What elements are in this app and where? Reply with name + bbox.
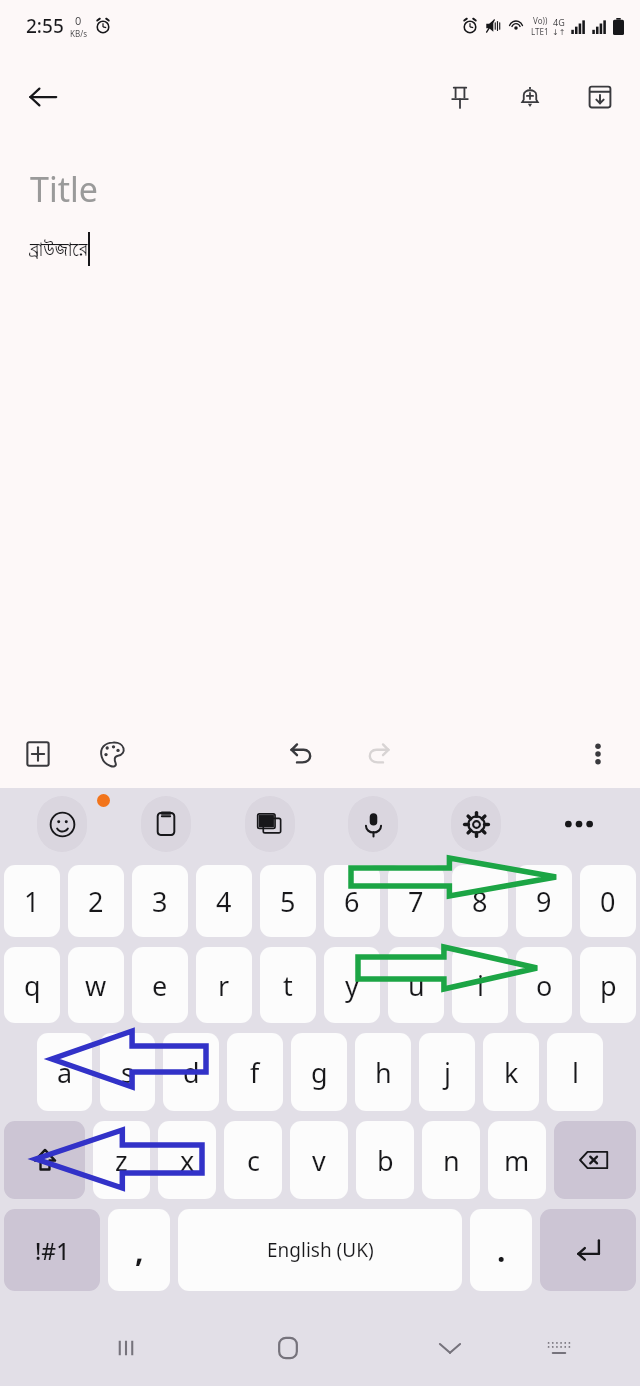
staticText: KB/s: [70, 28, 87, 39]
button[interactable]: j: [419, 1033, 475, 1111]
staticText: 5: [280, 883, 296, 920]
button[interactable]: Voice input: [348, 796, 398, 852]
staticText: x: [180, 1142, 195, 1179]
staticText: ব্রাউজারে: [30, 238, 88, 260]
button[interactable]: Full stop: [470, 1209, 532, 1291]
button[interactable]: s: [100, 1033, 155, 1111]
button[interactable]: Home: [260, 1320, 316, 1376]
button[interactable]: Settings: [451, 796, 501, 852]
button[interactable]: q: [4, 947, 60, 1023]
button[interactable]: More keyboard options: [527, 788, 630, 860]
staticText: v: [312, 1142, 326, 1179]
staticText: m: [504, 1142, 530, 1179]
button[interactable]: Undo: [274, 728, 326, 780]
button[interactable]: Enter: [540, 1209, 636, 1291]
button[interactable]: Shift: [4, 1121, 85, 1199]
button[interactable]: Clipboard: [141, 796, 191, 852]
button[interactable]: Keyboard modes: [245, 796, 295, 852]
staticText: z: [115, 1142, 128, 1179]
staticText: l: [572, 1054, 579, 1091]
staticText: 0: [75, 13, 82, 28]
button[interactable]: 5: [260, 865, 316, 937]
staticText: r: [218, 967, 230, 1004]
staticText: k: [504, 1054, 519, 1091]
button[interactable]: Symbols: [4, 1209, 100, 1291]
staticText: f: [250, 1054, 260, 1091]
staticText: 9: [536, 883, 552, 920]
button[interactable]: h: [355, 1033, 411, 1111]
staticText: g: [311, 1054, 328, 1091]
button[interactable]: Back: [14, 68, 72, 126]
button[interactable]: Hide keyboard: [422, 1320, 478, 1376]
button[interactable]: v: [290, 1121, 348, 1199]
button[interactable]: p: [580, 947, 636, 1023]
staticText: s: [121, 1054, 134, 1091]
button[interactable]: a: [37, 1033, 92, 1111]
button[interactable]: w: [68, 947, 124, 1023]
button[interactable]: o: [516, 947, 572, 1023]
staticText: ↓↑: [552, 28, 566, 37]
button[interactable]: Add reminder: [504, 71, 556, 123]
button[interactable]: 7: [388, 865, 444, 937]
staticText: 8: [472, 883, 488, 920]
button[interactable]: Comma: [108, 1209, 170, 1291]
staticText: e: [152, 967, 168, 1004]
button[interactable]: c: [224, 1121, 282, 1199]
button[interactable]: 6: [324, 865, 380, 937]
staticText: d: [183, 1054, 200, 1091]
staticText: 0: [600, 883, 616, 920]
button[interactable]: Redo: [354, 728, 406, 780]
button[interactable]: 9: [516, 865, 572, 937]
staticText: 3: [152, 883, 168, 920]
staticText: h: [375, 1054, 392, 1091]
button[interactable]: f: [227, 1033, 283, 1111]
staticText: u: [408, 967, 425, 1004]
staticText: b: [377, 1142, 394, 1179]
button[interactable]: r: [196, 947, 252, 1023]
button[interactable]: 1: [4, 865, 60, 937]
button[interactable]: n: [422, 1121, 480, 1199]
staticText: Title: [30, 166, 98, 212]
button[interactable]: i: [452, 947, 508, 1023]
button[interactable]: 4: [196, 865, 252, 937]
staticText: j: [444, 1054, 451, 1091]
button[interactable]: 0: [580, 865, 636, 937]
button[interactable]: English (UK) space: [178, 1209, 462, 1291]
staticText: 4: [216, 883, 232, 920]
button[interactable]: d: [163, 1033, 219, 1111]
button[interactable]: Add: [12, 728, 64, 780]
staticText: 4G: [553, 16, 565, 28]
button[interactable]: 2: [68, 865, 124, 937]
button[interactable]: m: [488, 1121, 546, 1199]
button[interactable]: Pin: [434, 71, 486, 123]
button[interactable]: y: [324, 947, 380, 1023]
staticText: Vo)): [533, 15, 548, 26]
button[interactable]: Switch keyboard: [531, 1320, 587, 1376]
button[interactable]: Archive: [574, 71, 626, 123]
staticText: y: [345, 967, 359, 1004]
button[interactable]: Backspace: [554, 1121, 636, 1199]
button[interactable]: b: [356, 1121, 414, 1199]
button[interactable]: Colour palette: [86, 728, 138, 780]
button[interactable]: Emoji: [37, 796, 87, 852]
button[interactable]: l: [547, 1033, 603, 1111]
staticText: 1: [24, 883, 40, 920]
button[interactable]: x: [158, 1121, 216, 1199]
button[interactable]: More options: [572, 728, 624, 780]
button[interactable]: Recents: [98, 1320, 154, 1376]
button[interactable]: t: [260, 947, 316, 1023]
button[interactable]: z: [93, 1121, 150, 1199]
button[interactable]: e: [132, 947, 188, 1023]
button[interactable]: k: [483, 1033, 539, 1111]
button[interactable]: 8: [452, 865, 508, 937]
staticText: English (UK): [267, 1237, 374, 1263]
button[interactable]: u: [388, 947, 444, 1023]
staticText: 2:55: [26, 13, 64, 39]
button[interactable]: g: [291, 1033, 347, 1111]
staticText: t: [283, 967, 293, 1004]
staticText: LTE1: [531, 26, 549, 37]
staticText: p: [600, 967, 617, 1004]
staticText: a: [57, 1054, 73, 1091]
button[interactable]: 3: [132, 865, 188, 937]
staticText: .: [497, 1230, 506, 1271]
